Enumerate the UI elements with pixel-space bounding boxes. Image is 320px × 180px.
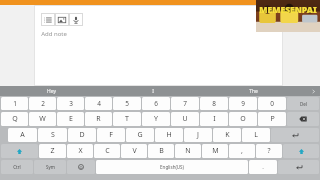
button[interactable]: I: [200, 112, 228, 126]
button[interactable]: W: [29, 112, 56, 126]
button[interactable]: E: [57, 112, 84, 126]
staticText: ?: [267, 146, 271, 156]
button[interactable]: Z: [39, 144, 66, 158]
button[interactable]: Enter: [278, 160, 319, 174]
button[interactable]: F: [97, 128, 125, 142]
button[interactable]: English(US): [96, 160, 248, 174]
staticText: F: [109, 130, 113, 140]
button[interactable]: Sym: [34, 160, 66, 174]
staticText: Del: [300, 101, 307, 107]
staticText: Q: [12, 114, 18, 124]
staticText: 9: [241, 99, 245, 108]
staticText: W: [39, 114, 46, 124]
button[interactable]: B: [148, 144, 174, 158]
staticText: T: [125, 114, 129, 124]
button[interactable]: 6: [142, 97, 170, 110]
staticText: M: [212, 146, 219, 156]
button[interactable]: K: [213, 128, 241, 142]
staticText: A: [20, 130, 25, 140]
staticText: Ctrl: [13, 164, 21, 170]
staticText: The: [249, 88, 258, 95]
button[interactable]: Del: [287, 97, 319, 110]
button[interactable]: Checklist: [41, 13, 55, 26]
button[interactable]: D: [68, 128, 96, 142]
staticText: E: [69, 114, 73, 124]
staticText: I: [213, 114, 216, 124]
staticText: Hey: [47, 88, 56, 95]
button[interactable]: Ctrl: [1, 160, 33, 174]
button[interactable]: 8: [200, 97, 228, 110]
staticText: .: [262, 163, 264, 171]
button[interactable]: Voice input: [69, 13, 83, 26]
button[interactable]: M: [202, 144, 228, 158]
button[interactable]: 0: [258, 97, 286, 110]
button[interactable]: Video player: [256, 0, 320, 32]
button[interactable]: Backspace: [287, 112, 319, 126]
staticText: B: [159, 146, 164, 156]
staticText: Sym: [46, 164, 55, 170]
button[interactable]: 5: [113, 97, 141, 110]
staticText: U: [182, 114, 188, 124]
button[interactable]: Shift: [1, 144, 38, 158]
button[interactable]: 4: [85, 97, 112, 110]
button[interactable]: Q: [1, 112, 28, 126]
staticText: N: [185, 146, 191, 156]
staticText: C: [105, 146, 110, 156]
staticText: K: [225, 130, 230, 140]
button[interactable]: G: [126, 128, 154, 142]
button[interactable]: V: [121, 144, 147, 158]
button[interactable]: T: [113, 112, 141, 126]
button[interactable]: R: [85, 112, 112, 126]
button[interactable]: .: [249, 160, 277, 174]
button[interactable]: U: [171, 112, 199, 126]
button[interactable]: S: [38, 128, 67, 142]
staticText: 5: [125, 99, 129, 108]
button[interactable]: 2: [29, 97, 56, 110]
button[interactable]: X: [67, 144, 93, 158]
button[interactable]: I: [102, 86, 203, 96]
button[interactable]: 3: [57, 97, 84, 110]
staticText: H: [166, 130, 172, 140]
button[interactable]: 9: [229, 97, 257, 110]
staticText: English(US): [160, 164, 184, 170]
staticText: 6: [154, 99, 158, 108]
staticText: 4: [97, 99, 101, 108]
button[interactable]: N: [175, 144, 201, 158]
button[interactable]: Y: [142, 112, 170, 126]
staticText: G: [137, 130, 143, 140]
button[interactable]: Insert image: [55, 13, 69, 26]
staticText: MEMESENPAI: [259, 4, 317, 16]
staticText: 3: [69, 99, 73, 108]
staticText: ,: [241, 146, 243, 156]
staticText: I: [152, 88, 154, 95]
button[interactable]: H: [155, 128, 183, 142]
button[interactable]: 1: [1, 97, 28, 110]
staticText: O: [240, 114, 246, 124]
button[interactable]: Shift: [283, 144, 319, 158]
staticText: Z: [50, 146, 55, 156]
staticText: X: [78, 146, 83, 156]
button[interactable]: Emoji: [67, 160, 95, 174]
button[interactable]: O: [229, 112, 257, 126]
button[interactable]: A: [8, 128, 37, 142]
staticText: R: [96, 114, 101, 124]
button[interactable]: C: [94, 144, 120, 158]
button[interactable]: More suggestions: [306, 86, 320, 96]
staticText: Add note: [41, 30, 67, 38]
button[interactable]: The: [203, 86, 304, 96]
button[interactable]: P: [258, 112, 286, 126]
button[interactable]: Hey: [0, 86, 102, 96]
staticText: Y: [154, 114, 158, 124]
button[interactable]: ,: [229, 144, 255, 158]
staticText: P: [270, 114, 275, 124]
button[interactable]: 7: [171, 97, 199, 110]
button[interactable]: J: [184, 128, 212, 142]
staticText: 0: [270, 99, 274, 108]
button[interactable]: ?: [256, 144, 282, 158]
staticText: 1: [13, 99, 17, 108]
button[interactable]: Enter: [271, 128, 319, 142]
staticText: V: [132, 146, 137, 156]
staticText: J: [197, 130, 199, 140]
button[interactable]: L: [242, 128, 270, 142]
staticText: 8: [212, 99, 216, 108]
